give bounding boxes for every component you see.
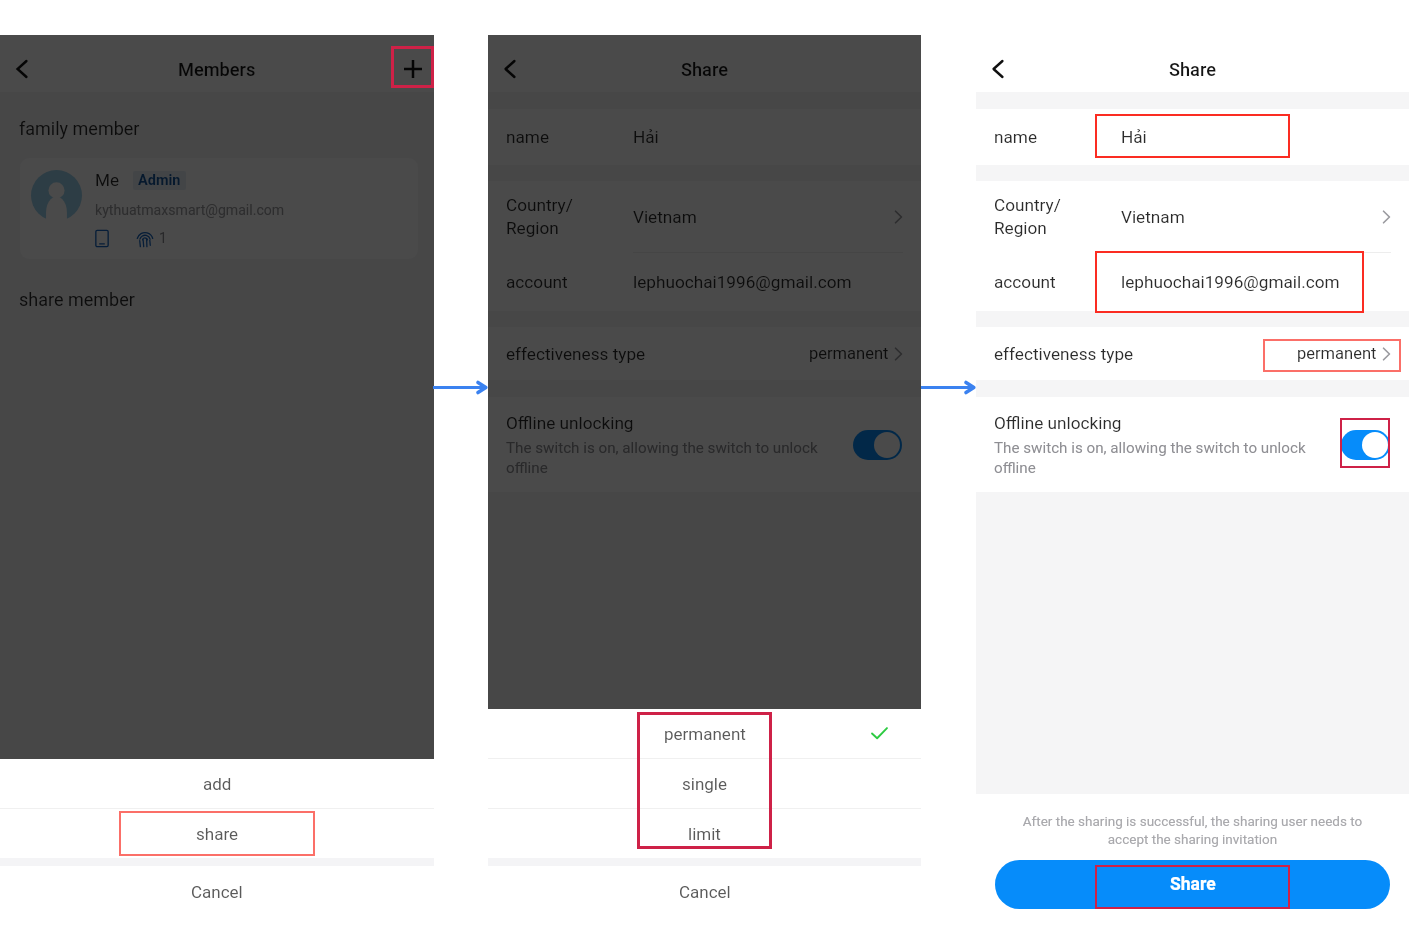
staticText: single [682, 774, 727, 794]
button[interactable]: Share [995, 860, 1390, 909]
button[interactable]: limit [488, 809, 921, 858]
staticText: 1 [159, 230, 167, 247]
staticText: Cancel [191, 882, 243, 902]
button[interactable]: Cancel [488, 866, 921, 918]
staticText: limit [688, 824, 721, 844]
staticText: name [994, 127, 1121, 147]
button[interactable]: account [488, 253, 921, 311]
staticText: Vietnam [633, 207, 895, 227]
button[interactable]: name [976, 109, 1409, 165]
staticText: permanent [809, 344, 889, 363]
staticText: Offline unlocking [994, 413, 1122, 433]
staticText: lephuochai1996@gmail.com [1121, 272, 1340, 292]
button[interactable]: Offline unlocking [488, 397, 921, 492]
staticText: Hải [1121, 127, 1147, 147]
button[interactable]: Offline unlocking [976, 397, 1409, 492]
staticText: account [994, 272, 1121, 292]
staticText: Members [178, 59, 256, 80]
staticText: Me [95, 170, 120, 190]
staticText: permanent [664, 724, 746, 744]
staticText: After the sharing is successful, the sha… [1012, 813, 1373, 847]
button[interactable]: Country/ Region [976, 181, 1409, 252]
staticText: Share [1170, 874, 1216, 895]
staticText: Share [1169, 59, 1216, 80]
button[interactable]: effectiveness type [976, 327, 1409, 380]
staticText: Cancel [679, 882, 731, 902]
button[interactable]: Back [0, 46, 43, 92]
button[interactable]: single [488, 759, 921, 808]
staticText: lephuochai1996@gmail.com [633, 272, 852, 292]
button[interactable]: add [0, 759, 434, 808]
button[interactable]: name [488, 109, 921, 165]
staticText: account [506, 272, 633, 292]
staticText: effectiveness type [994, 344, 1134, 364]
staticText: family member [19, 118, 140, 139]
button[interactable]: Offline unlocking toggle [853, 430, 902, 460]
staticText: kythuatmaxsmart@gmail.com [95, 202, 285, 219]
button[interactable]: effectiveness type [488, 327, 921, 380]
staticText: Share [681, 59, 728, 80]
button[interactable]: Back [976, 46, 1019, 92]
button[interactable]: Country/ Region [488, 181, 921, 252]
button[interactable]: share [0, 809, 434, 858]
staticText: permanent [1297, 344, 1377, 363]
staticText: The switch is on, allowing the switch to… [506, 439, 836, 477]
staticText: Country/ Region [506, 195, 633, 238]
button[interactable]: Add member [391, 46, 434, 92]
staticText: The switch is on, allowing the switch to… [994, 439, 1324, 477]
staticText: add [203, 774, 232, 794]
staticText: Vietnam [1121, 207, 1383, 227]
button[interactable]: account [976, 253, 1409, 311]
button[interactable]: Offline unlocking toggle [1341, 430, 1390, 460]
staticText: Admin [138, 172, 181, 189]
button[interactable]: Me [20, 158, 418, 259]
staticText: share [196, 824, 239, 844]
staticText: Country/ Region [994, 195, 1121, 238]
staticText: Offline unlocking [506, 413, 634, 433]
staticText: name [506, 127, 633, 147]
button[interactable]: permanent [488, 709, 921, 758]
button[interactable]: Cancel [0, 866, 434, 918]
staticText: Hải [633, 127, 659, 147]
staticText: effectiveness type [506, 344, 646, 364]
button[interactable]: Back [488, 46, 531, 92]
staticText: share member [19, 289, 135, 310]
